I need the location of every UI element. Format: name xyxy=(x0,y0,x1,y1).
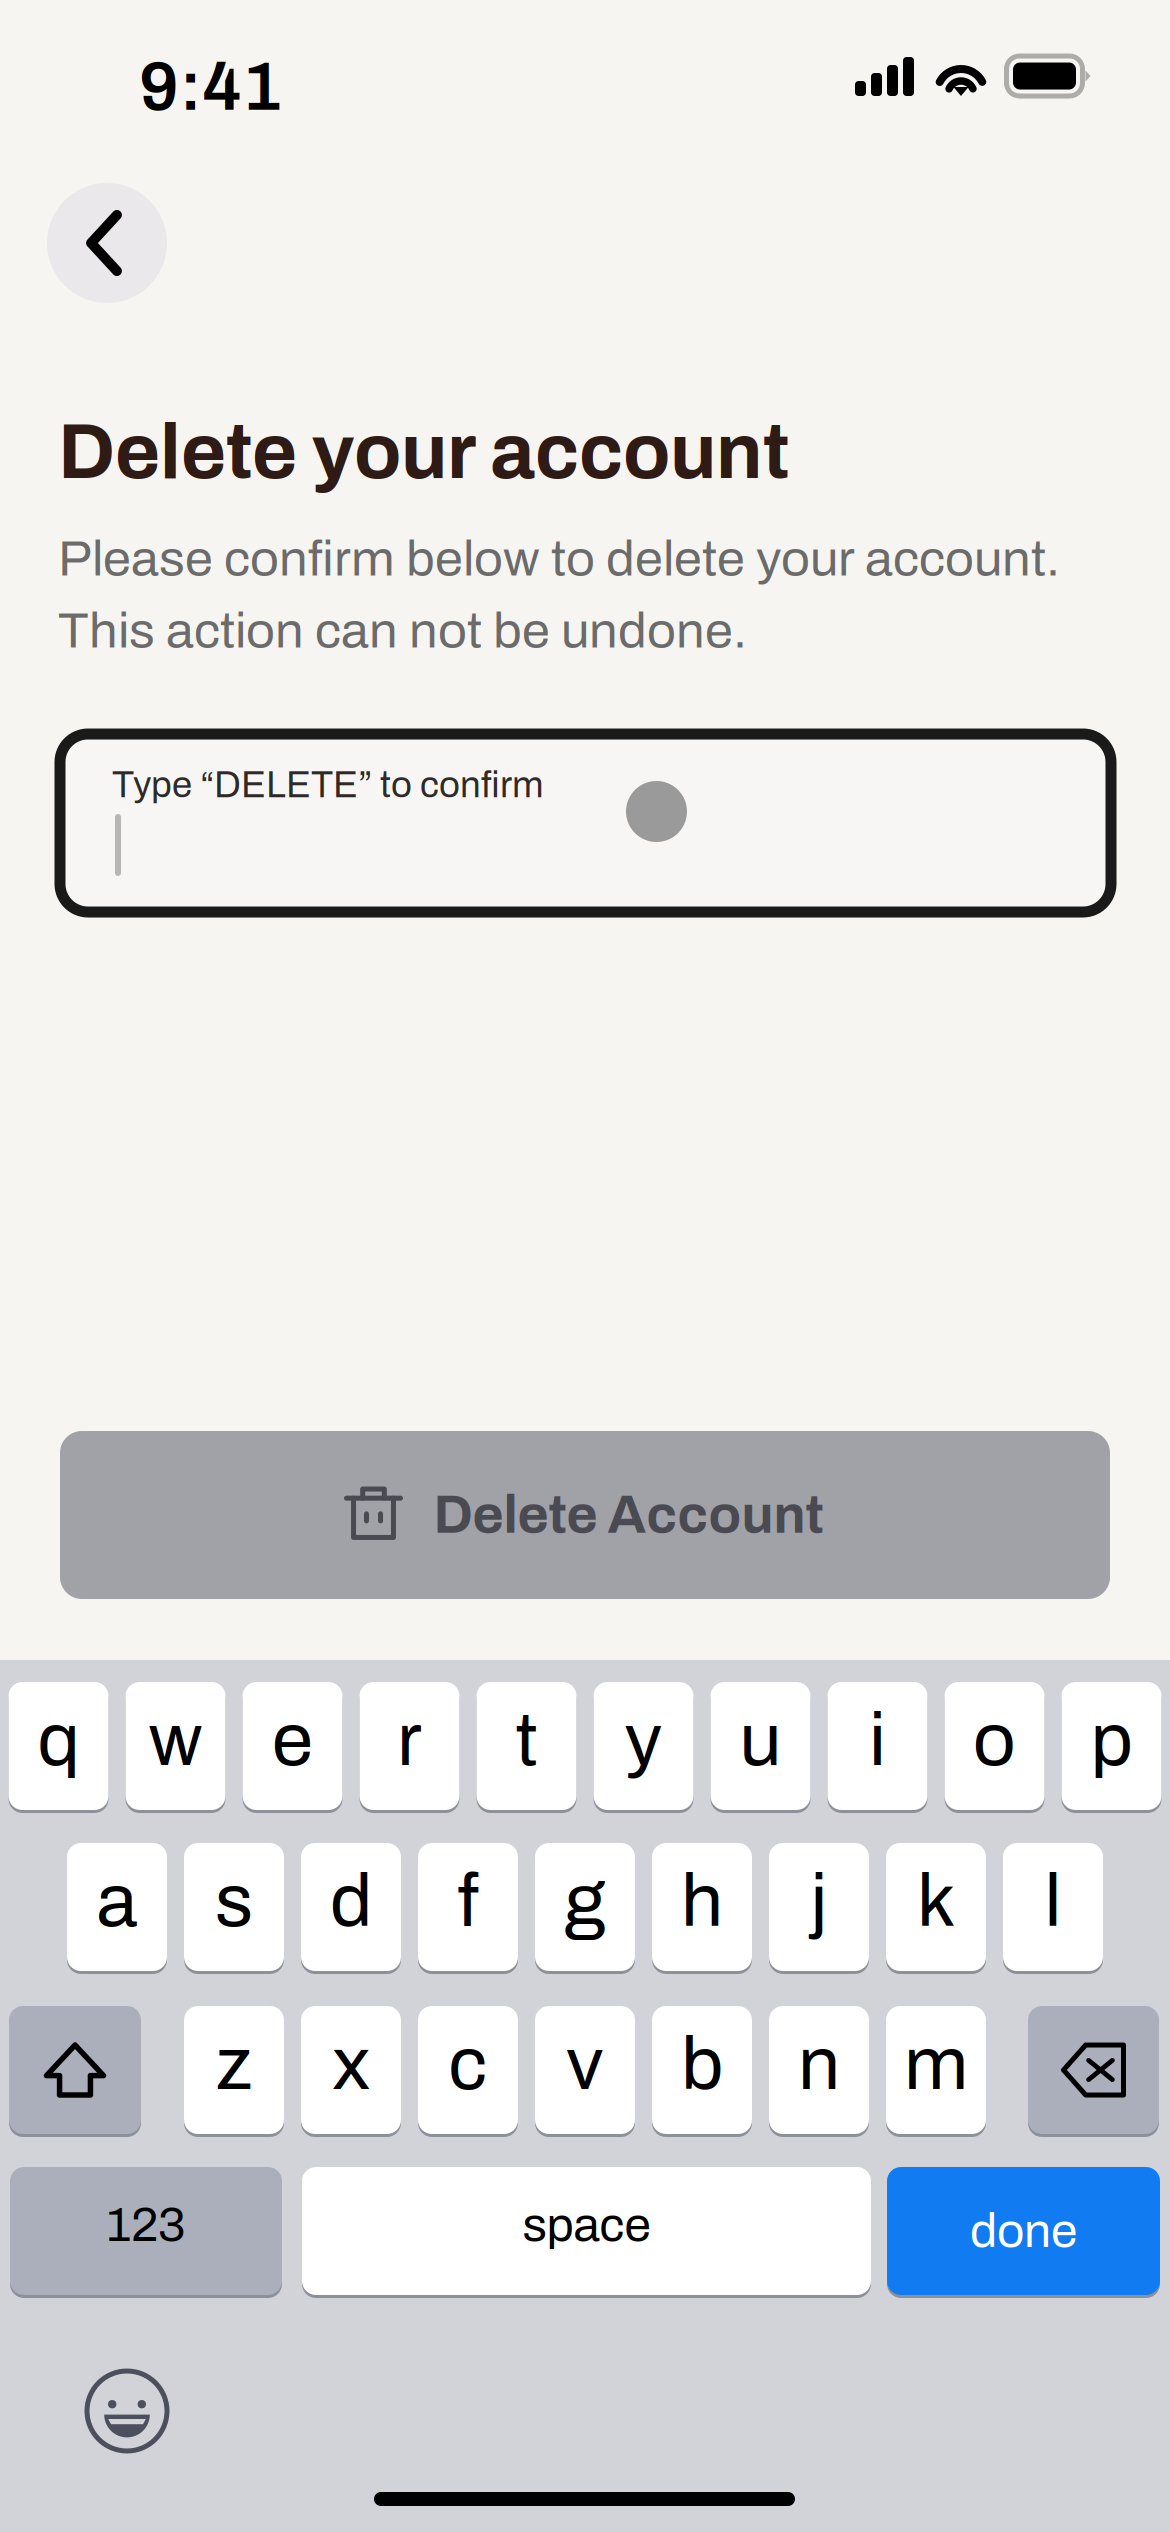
staticText: y xyxy=(624,1699,662,1781)
staticText: This action can not be undone. xyxy=(58,603,747,658)
staticText: space xyxy=(522,2199,650,2251)
staticText: p xyxy=(1090,1699,1132,1781)
button[interactable]: o xyxy=(944,1682,1044,1810)
button[interactable]: a xyxy=(67,1843,167,1971)
staticText: done xyxy=(970,2205,1077,2257)
staticText: l xyxy=(1044,1860,1061,1942)
button[interactable]: u xyxy=(710,1682,810,1810)
button[interactable]: h xyxy=(652,1843,752,1971)
staticText: i xyxy=(869,1699,886,1781)
staticText: v xyxy=(566,2023,604,2105)
staticText: h xyxy=(681,1860,723,1942)
button[interactable]: Delete xyxy=(1028,2006,1159,2134)
button[interactable]: k xyxy=(886,1843,986,1971)
staticText: a xyxy=(96,1860,137,1942)
staticText: j xyxy=(810,1860,827,1942)
staticText: u xyxy=(739,1699,781,1781)
staticText: d xyxy=(330,1860,372,1942)
staticText: z xyxy=(215,2023,252,2105)
staticText: o xyxy=(973,1699,1016,1781)
staticText: c xyxy=(448,2023,487,2105)
button[interactable]: done xyxy=(887,2167,1160,2295)
button[interactable]: p xyxy=(1061,1682,1161,1810)
staticText: x xyxy=(332,2023,370,2105)
staticText: 9:41 xyxy=(139,49,282,124)
button[interactable]: i xyxy=(827,1682,927,1810)
button[interactable]: j xyxy=(769,1843,869,1971)
button[interactable]: r xyxy=(359,1682,459,1810)
button[interactable]: e xyxy=(242,1682,342,1810)
staticText: e xyxy=(272,1699,313,1781)
staticText: Type “DELETE” to confirm xyxy=(112,765,544,805)
button[interactable]: l xyxy=(1003,1843,1103,1971)
staticText: g xyxy=(564,1860,606,1942)
staticText: k xyxy=(917,1860,955,1942)
button[interactable]: m xyxy=(886,2006,986,2134)
staticText: m xyxy=(904,2023,968,2105)
button[interactable]: x xyxy=(301,2006,401,2134)
button[interactable]: g xyxy=(535,1843,635,1971)
staticText: t xyxy=(515,1699,537,1781)
button[interactable]: b xyxy=(652,2006,752,2134)
staticText: r xyxy=(397,1699,422,1781)
button[interactable]: Emoji keyboard xyxy=(87,2371,167,2451)
button[interactable]: z xyxy=(184,2006,284,2134)
button[interactable]: t xyxy=(476,1682,576,1810)
button[interactable]: f xyxy=(418,1843,518,1971)
button[interactable]: c xyxy=(418,2006,518,2134)
button[interactable]: w xyxy=(125,1682,225,1810)
staticText: q xyxy=(37,1699,79,1781)
button[interactable]: y xyxy=(593,1682,693,1810)
staticText: Delete Account xyxy=(433,1486,823,1544)
button[interactable]: Back xyxy=(47,183,167,303)
button[interactable]: Shift xyxy=(9,2006,141,2134)
button[interactable]: n xyxy=(769,2006,869,2134)
button[interactable]: s xyxy=(184,1843,284,1971)
staticText: b xyxy=(681,2023,723,2105)
staticText: Delete your account xyxy=(58,410,789,494)
button[interactable]: 123 xyxy=(10,2167,282,2295)
staticText: f xyxy=(457,1860,478,1942)
button[interactable]: v xyxy=(535,2006,635,2134)
button[interactable]: space xyxy=(302,2167,871,2295)
button[interactable]: d xyxy=(301,1843,401,1971)
staticText: 123 xyxy=(106,2199,186,2251)
staticText: Please confirm below to delete your acco… xyxy=(58,531,1060,586)
staticText: n xyxy=(798,2023,840,2105)
button[interactable]: Delete Account xyxy=(60,1431,1110,1599)
staticText: w xyxy=(148,1699,202,1781)
button[interactable]: q xyxy=(8,1682,108,1810)
staticText: s xyxy=(215,1860,253,1942)
